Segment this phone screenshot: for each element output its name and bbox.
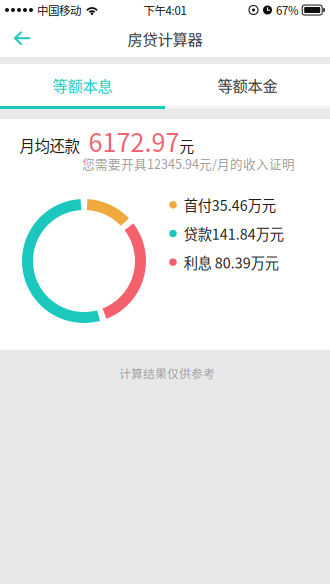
staticText: 中国移动 bbox=[37, 2, 81, 18]
button[interactable]: 等额本金 bbox=[165, 64, 330, 106]
staticText: 首付35.46万元 bbox=[184, 194, 276, 215]
staticText: 6172.97 bbox=[88, 123, 179, 159]
staticText: 等额本息 bbox=[52, 74, 112, 96]
staticText: 利息 80.39万元 bbox=[184, 252, 279, 272]
staticText: 67% bbox=[276, 2, 299, 18]
staticText: 房贷计算器 bbox=[127, 27, 202, 50]
button[interactable]: 返回 bbox=[0, 20, 44, 57]
staticText: 月均还款 bbox=[19, 134, 79, 156]
staticText: 您需要开具12345.94元/月的收入证明 bbox=[82, 154, 295, 172]
staticText: 等额本金 bbox=[217, 74, 277, 96]
staticText: 贷款141.84万元 bbox=[184, 223, 284, 244]
staticText: 下午4:01 bbox=[143, 2, 186, 18]
staticText: 计算结果仅供参考 bbox=[119, 364, 215, 382]
button[interactable]: 等额本息 bbox=[0, 64, 165, 106]
staticText: 元 bbox=[179, 135, 194, 156]
